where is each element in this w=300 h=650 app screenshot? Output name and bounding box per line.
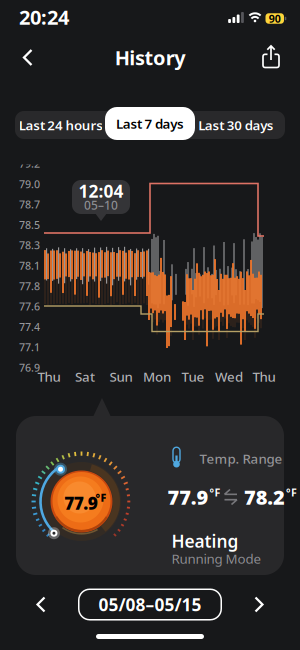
button[interactable]: Back [19,48,37,67]
staticText: °F [286,485,297,499]
staticText: Last 24 hours [19,116,103,134]
staticText: Thu [37,368,60,385]
staticText: 05–10 [84,197,118,213]
staticText: Tue [181,368,204,385]
button[interactable]: Last 24 hours [13,111,109,139]
staticText: 78.1 [19,258,40,273]
staticText: °F [209,485,220,499]
staticText: 78.3 [19,238,40,252]
button[interactable]: Last 7 days [105,107,195,140]
staticText: 78.5 [19,218,40,232]
button[interactable]: Previous period [34,595,48,613]
button[interactable]: Share [259,44,283,68]
button[interactable]: Next period [252,595,266,613]
staticText: 79.0 [19,177,40,191]
staticText: 05/08–05/15 [98,593,201,616]
staticText: Sat [75,368,95,385]
staticText: 77.9 [64,491,98,514]
staticText: 90 [269,11,281,26]
staticText: 76.9 [19,360,40,375]
staticText: 78.2 [244,484,285,510]
staticText: Last 7 days [116,115,184,132]
staticText: Thu [252,368,275,385]
staticText: History [115,44,185,71]
staticText: 79.2 [19,156,40,171]
staticText: Mon [143,368,171,385]
staticText: 20:24 [19,4,69,30]
staticText: 77.9 [168,484,208,510]
staticText: °F [95,490,106,505]
staticText: Last 30 days [198,116,274,134]
staticText: Running Mode [171,550,261,567]
staticText: 77.4 [19,320,40,334]
staticText: Heating [171,529,238,552]
button[interactable]: 05/08–05/15 [78,588,222,620]
staticText: Sun [109,368,132,385]
staticText: 78.7 [19,197,40,211]
staticText: 77.6 [19,299,40,313]
staticText: 77.1 [19,340,40,354]
staticText: 12:04 [78,179,123,202]
staticText: Wed [215,368,243,385]
staticText: 77.8 [19,279,40,293]
button[interactable]: Last 30 days [188,111,284,139]
staticText: Temp. Range [199,450,282,467]
